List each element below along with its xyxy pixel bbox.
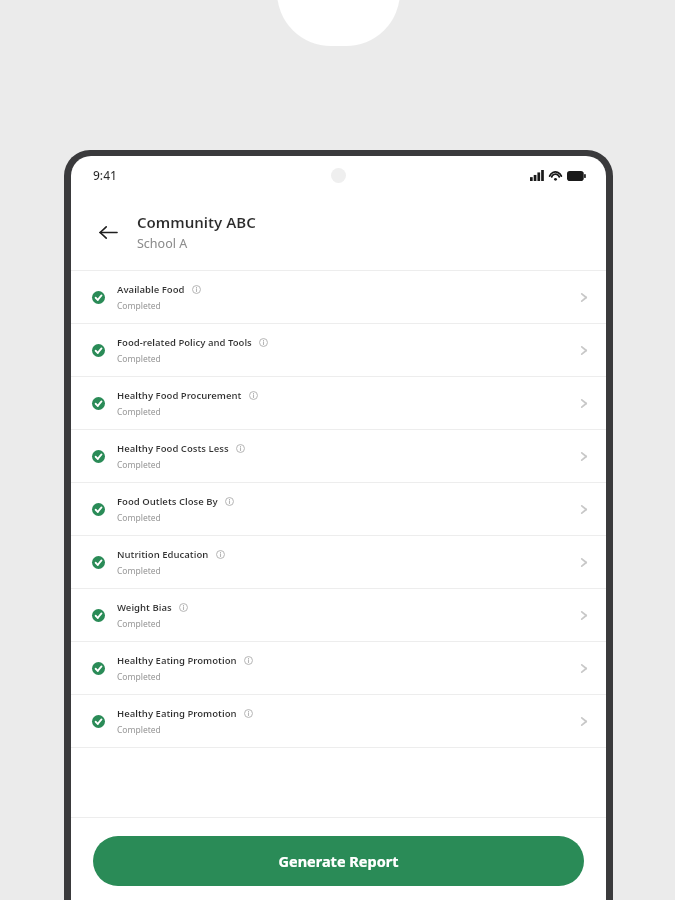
staticText: Completed: [117, 724, 161, 736]
staticText: Completed: [117, 353, 161, 365]
staticText: Completed: [117, 459, 161, 471]
button[interactable]: Available Food: [71, 271, 606, 323]
button[interactable]: Weight Bias: [71, 589, 606, 641]
staticText: Community ABC: [137, 212, 256, 232]
staticText: School A: [137, 235, 188, 252]
staticText: Completed: [117, 512, 161, 524]
staticText: Generate Report: [278, 851, 399, 871]
staticText: Healthy Food Costs Less: [117, 442, 229, 455]
button[interactable]: Food Outlets Close By: [71, 483, 606, 535]
staticText: Available Food: [117, 283, 185, 296]
button[interactable]: Back: [93, 217, 123, 247]
button[interactable]: Nutrition Education: [71, 536, 606, 588]
staticText: Healthy Food Procurement: [117, 389, 242, 402]
staticText: 9:41: [93, 167, 117, 183]
staticText: Completed: [117, 618, 161, 630]
button[interactable]: Healthy Food Costs Less: [71, 430, 606, 482]
staticText: Completed: [117, 565, 161, 577]
staticText: Completed: [117, 406, 161, 418]
staticText: Food-related Policy and Tools: [117, 336, 252, 349]
staticText: Weight Bias: [117, 601, 172, 614]
staticText: Nutrition Education: [117, 548, 209, 561]
staticText: Healthy Eating Promotion: [117, 707, 237, 720]
button[interactable]: Healthy Eating Promotion: [71, 642, 606, 694]
button[interactable]: Generate Report: [93, 836, 584, 886]
button[interactable]: Food-related Policy and Tools: [71, 324, 606, 376]
button[interactable]: Healthy Food Procurement: [71, 377, 606, 429]
staticText: Completed: [117, 300, 161, 312]
staticText: Food Outlets Close By: [117, 495, 218, 508]
staticText: Completed: [117, 671, 161, 683]
button[interactable]: Healthy Eating Promotion: [71, 695, 606, 747]
staticText: Healthy Eating Promotion: [117, 654, 237, 667]
